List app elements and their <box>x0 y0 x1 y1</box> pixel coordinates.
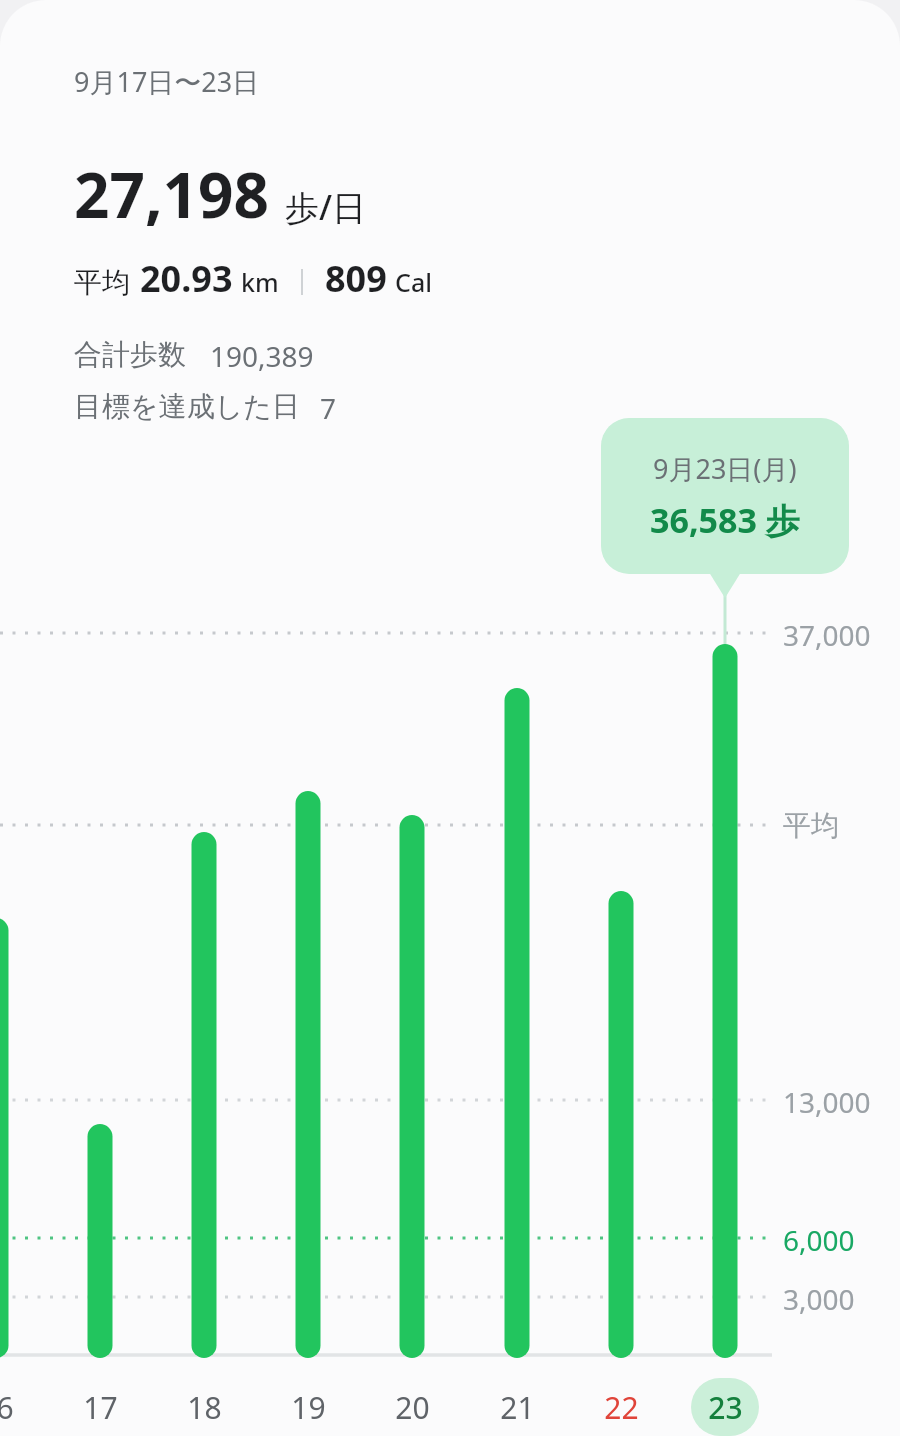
staticText: 19 <box>291 1387 326 1428</box>
staticText: 目標を達成した日 <box>74 389 300 424</box>
staticText: 7 <box>320 389 337 427</box>
staticText: 36,583 歩 <box>650 497 800 543</box>
staticText: 3,000 <box>783 1280 855 1318</box>
staticText: 20 <box>395 1387 430 1428</box>
staticText: Cal <box>395 265 432 299</box>
staticText: 6,000 <box>783 1221 855 1259</box>
staticText: 22 <box>604 1387 639 1428</box>
staticText: 17 <box>83 1387 118 1428</box>
staticText: 16 <box>0 1387 14 1428</box>
staticText: 13,000 <box>783 1083 871 1121</box>
staticText: 809 <box>325 254 387 303</box>
button[interactable]: 16 <box>0 1378 34 1436</box>
staticText: 平均 <box>783 808 839 843</box>
staticText: 合計歩数 <box>74 337 186 372</box>
button[interactable]: 20 <box>374 1378 450 1436</box>
staticText: 20.93 <box>140 254 233 303</box>
button[interactable]: 23 <box>687 1378 763 1436</box>
button[interactable]: 18 <box>166 1378 242 1436</box>
staticText: 27,198 <box>74 152 269 236</box>
staticText: km <box>241 265 279 299</box>
staticText: 21 <box>500 1387 535 1428</box>
button[interactable]: 19 <box>270 1378 346 1436</box>
staticText: 190,389 <box>210 337 314 375</box>
button[interactable]: 17 <box>62 1378 138 1436</box>
button[interactable]: 22 <box>583 1378 659 1436</box>
button[interactable]: 21 <box>479 1378 555 1436</box>
staticText: 歩/日 <box>285 184 367 230</box>
button[interactable]: 9月23日(月) <box>601 418 849 574</box>
staticText: 18 <box>187 1387 222 1428</box>
staticText: 9月23日(月) <box>653 450 797 487</box>
staticText: 37,000 <box>783 616 871 654</box>
staticText: 23 <box>708 1387 743 1428</box>
staticText: 平均 <box>74 265 130 300</box>
staticText: 9月17日〜23日 <box>74 63 260 100</box>
